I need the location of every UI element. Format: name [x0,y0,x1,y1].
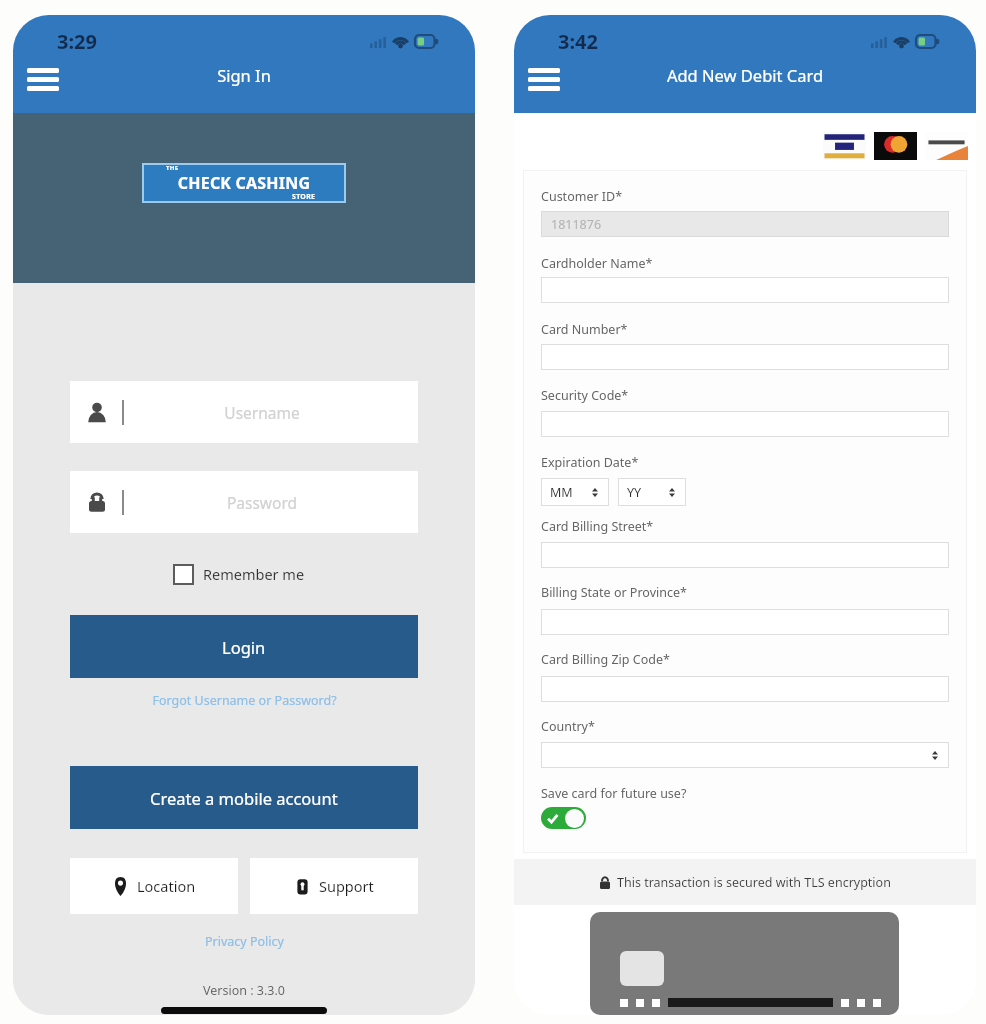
staticText: Card Billing Street* [541,518,654,535]
staticText: Country* [541,718,595,735]
staticText: CHECK CASHING [142,172,346,194]
button[interactable]: Password [70,471,418,533]
button[interactable]: Save card for future use toggle [541,807,586,829]
staticText: Card Billing Zip Code* [541,651,670,668]
staticText: Save card for future use? [541,785,687,802]
button[interactable] [541,609,949,635]
button[interactable] [541,542,949,568]
staticText: Location [137,876,196,896]
staticText: Customer ID* [541,188,623,205]
button[interactable] [541,411,949,437]
staticText: Support [319,876,374,896]
button[interactable]: MM [541,478,609,506]
staticText: Login [222,636,266,658]
staticText: 3:42 [558,28,598,55]
button[interactable] [541,742,949,768]
staticText: Expiration Date* [541,454,639,471]
button[interactable]: Create a mobile account [70,766,418,829]
button[interactable]: Support [250,858,418,914]
staticText: Username [88,402,436,423]
staticText: Billing State or Province* [541,584,687,601]
staticText: Create a mobile account [150,787,338,809]
staticText: Cardholder Name* [541,255,653,272]
staticText: MM [550,484,573,501]
staticText: STORE [292,192,316,202]
staticText: Security Code* [541,387,629,404]
staticText: Add New Debit Card [514,64,976,86]
button[interactable]: Location [70,858,238,914]
button[interactable]: Open navigation menu [19,58,67,100]
button[interactable]: Username [70,381,418,443]
button[interactable] [541,344,949,370]
button[interactable]: Remember me [13,559,470,589]
staticText: Card Number* [541,321,628,338]
button[interactable] [541,676,949,702]
button[interactable]: Forgot Username or Password? [146,687,343,714]
staticText: THE [166,164,179,172]
button[interactable]: 1811876 [541,211,949,237]
staticText: Version : 3.3.0 [13,982,475,999]
staticText: Sign In [13,64,475,86]
button[interactable]: Open navigation menu [520,58,568,100]
staticText: YY [627,484,642,501]
button[interactable]: YY [618,478,686,506]
staticText: Password [88,492,436,513]
staticText: 1811876 [551,216,602,233]
button[interactable]: Privacy Policy [199,928,290,955]
staticText: This transaction is secured with TLS enc… [617,874,891,891]
button[interactable] [541,277,949,303]
staticText: 3:29 [57,28,97,55]
button[interactable]: Login [70,615,418,678]
staticText: Remember me [203,564,305,584]
